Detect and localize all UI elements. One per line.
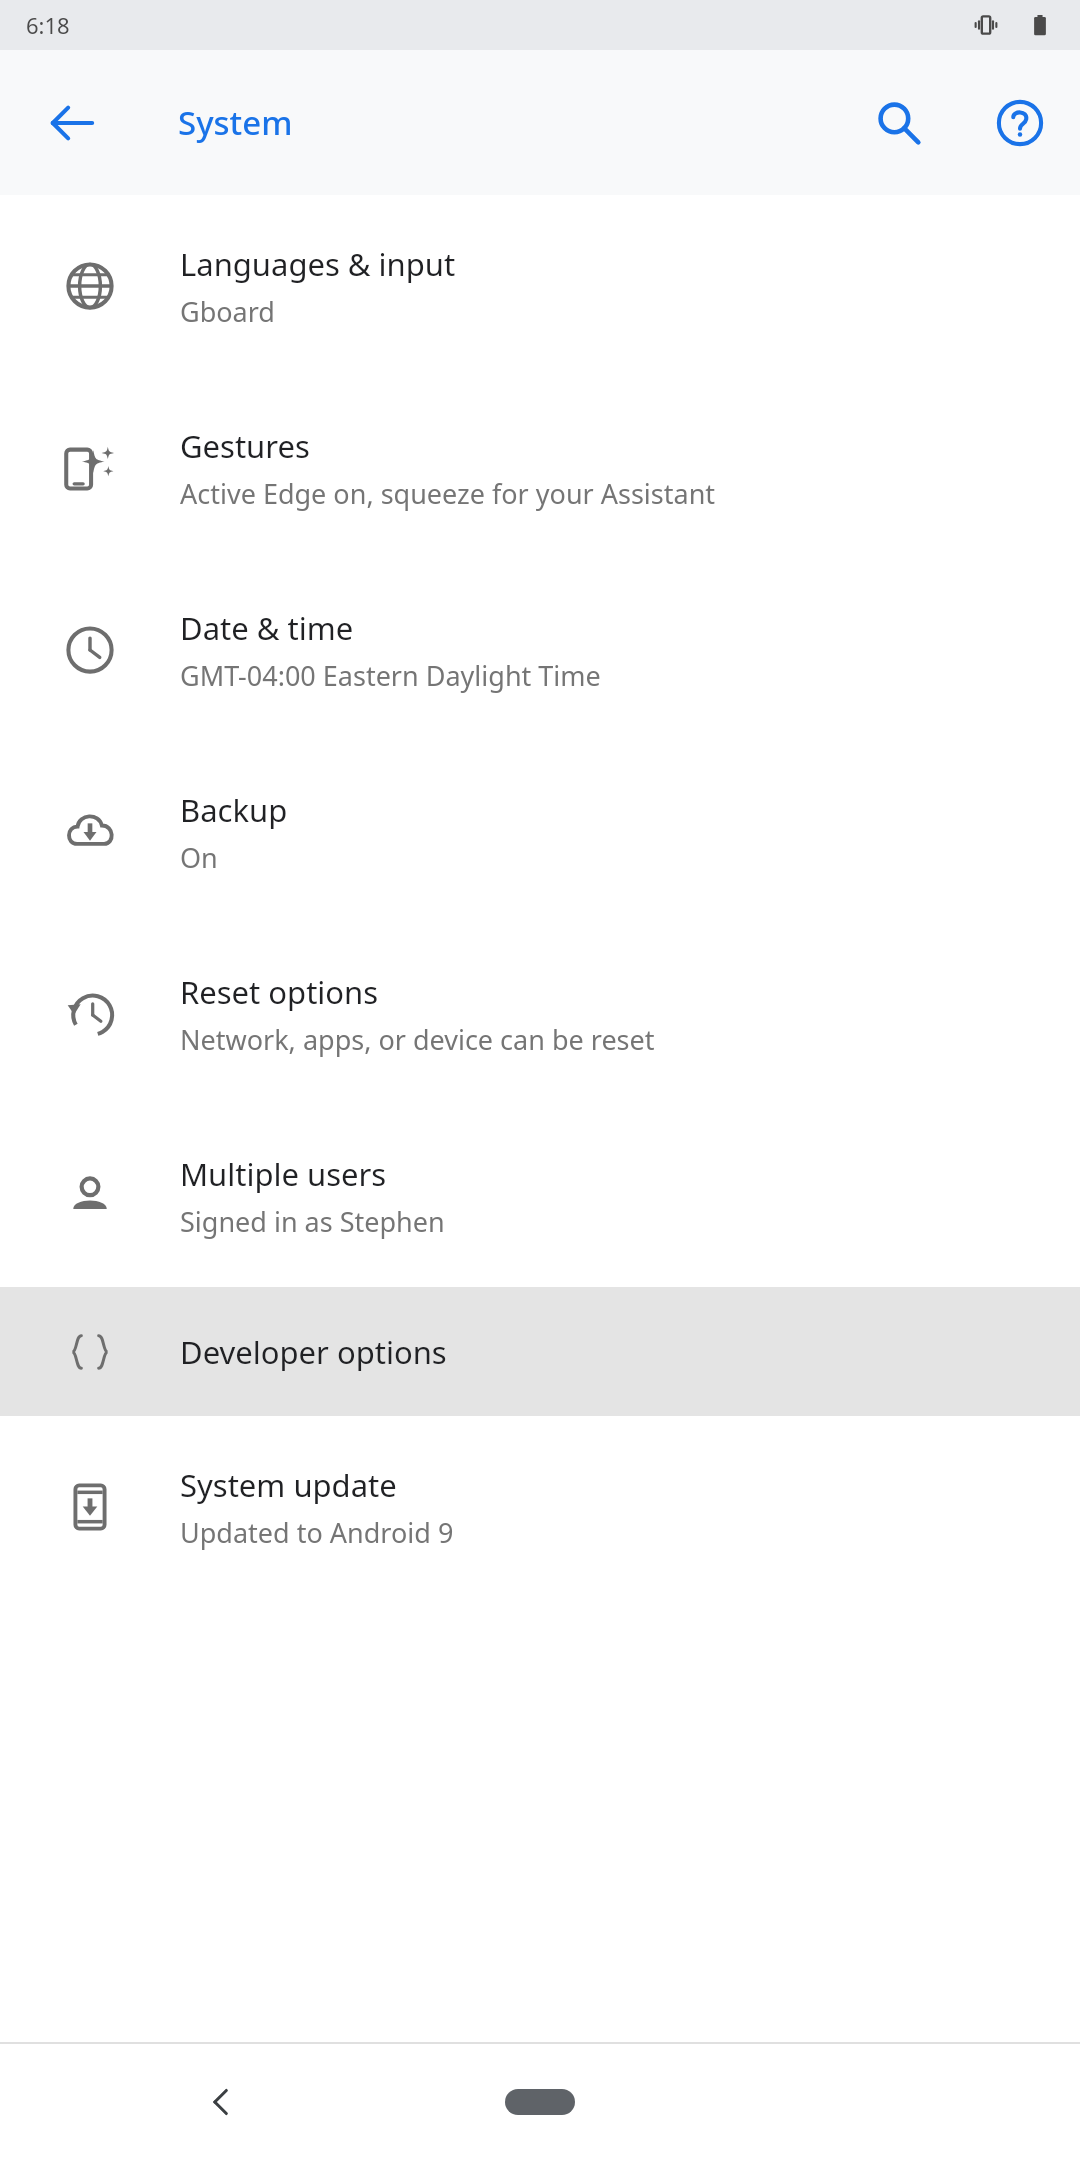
staticText: Updated to Android 9 (180, 1514, 454, 1551)
button[interactable]: Backup (0, 741, 1080, 923)
button[interactable]: Search (855, 79, 943, 167)
staticText: Gboard (180, 293, 275, 330)
button[interactable]: Home (465, 2067, 615, 2137)
staticText: Backup (180, 789, 288, 831)
staticText: Multiple users (180, 1153, 387, 1195)
staticText: Active Edge on, squeeze for your Assista… (180, 475, 716, 512)
staticText: Reset options (180, 971, 379, 1013)
button[interactable]: Reset options (0, 923, 1080, 1105)
staticText: Signed in as Stephen (180, 1203, 445, 1240)
button[interactable]: Multiple users (0, 1105, 1080, 1287)
button[interactable]: Date & time (0, 559, 1080, 741)
staticText: System update (180, 1464, 397, 1506)
button[interactable]: Help (976, 79, 1064, 167)
button[interactable]: Back (178, 2058, 266, 2146)
button[interactable]: Gestures (0, 377, 1080, 559)
button[interactable]: Languages & input (0, 195, 1080, 377)
staticText: GMT-04:00 Eastern Daylight Time (180, 657, 601, 694)
button[interactable]: Back (28, 79, 116, 167)
staticText: Gestures (180, 425, 310, 467)
staticText: Network, apps, or device can be reset (180, 1021, 655, 1058)
button[interactable]: System update (0, 1416, 1080, 1598)
staticText: 6:18 (26, 10, 70, 40)
staticText: On (180, 839, 218, 876)
staticText: Date & time (180, 607, 354, 649)
button[interactable]: Developer options (0, 1287, 1080, 1416)
staticText: Developer options (180, 1331, 447, 1373)
staticText: System (178, 100, 293, 145)
staticText: Languages & input (180, 243, 456, 285)
